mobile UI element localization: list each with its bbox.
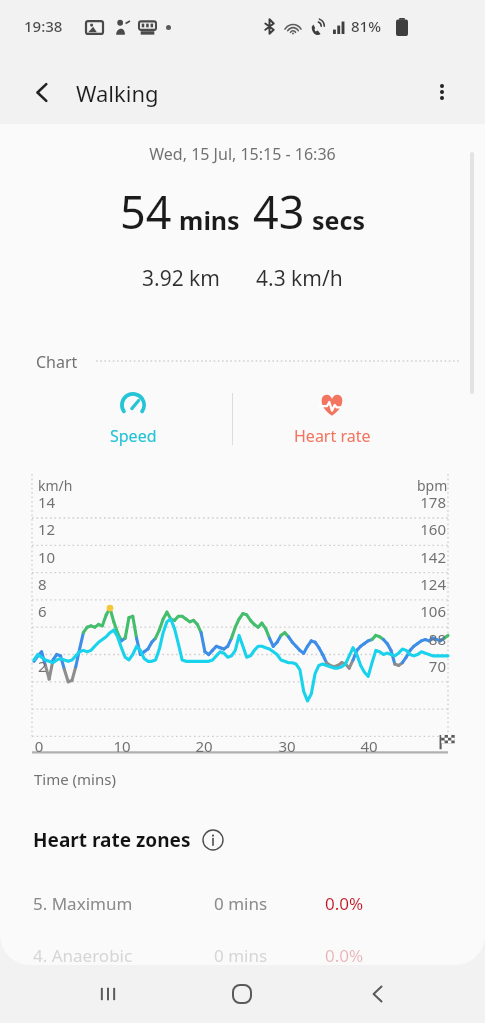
staticText: Wed, 15 Jul, 15:15 - 16:36 xyxy=(0,143,485,165)
staticText: 8 xyxy=(38,574,47,594)
staticText: 81% xyxy=(351,16,381,36)
staticText: Heart rate zones xyxy=(33,827,191,853)
staticText: Time (mins) xyxy=(34,769,116,789)
button[interactable]: Home xyxy=(212,965,272,1023)
staticText: 178 xyxy=(414,492,446,512)
button[interactable]: Heart rate zones xyxy=(33,827,224,853)
staticText: bpm xyxy=(417,476,448,495)
staticText: 70 xyxy=(414,656,446,676)
button[interactable]: Back xyxy=(20,70,64,114)
staticText: 4. Anaerobic xyxy=(33,944,133,965)
button[interactable]: More options xyxy=(420,70,464,114)
staticText: 4.3 km/h xyxy=(256,264,343,293)
staticText: 30 xyxy=(272,736,302,756)
staticText: 0 xyxy=(24,736,54,756)
staticText: Chart xyxy=(36,351,78,373)
staticText: 0.0% xyxy=(325,944,364,965)
staticText: 6 xyxy=(38,601,47,621)
staticText: Walking xyxy=(76,78,159,108)
staticText: 12 xyxy=(38,519,56,539)
button[interactable]: Recents xyxy=(78,965,138,1023)
staticText: 0 mins xyxy=(214,892,268,915)
other: Finish xyxy=(439,734,455,750)
staticText: 5. Maximum xyxy=(33,892,133,915)
button[interactable]: 4. Anaerobic xyxy=(0,944,485,965)
staticText: 124 xyxy=(414,574,446,594)
staticText: 10 xyxy=(107,736,137,756)
staticText: 19:38 xyxy=(24,16,63,36)
staticText: 106 xyxy=(414,601,446,621)
button[interactable]: Heart rate xyxy=(233,387,431,450)
staticText: mins xyxy=(179,203,240,237)
staticText: 142 xyxy=(414,547,446,567)
staticText: 160 xyxy=(414,519,446,539)
staticText: 0.0% xyxy=(325,892,364,915)
button[interactable]: Back xyxy=(348,965,408,1023)
staticText: 14 xyxy=(38,492,56,512)
staticText: 20 xyxy=(189,736,219,756)
staticText: 2 xyxy=(38,656,47,676)
staticText: secs xyxy=(312,203,365,237)
staticText: km/h xyxy=(38,476,73,495)
staticText: 54 xyxy=(120,181,172,242)
staticText: Heart rate xyxy=(294,425,371,447)
staticText: 43 xyxy=(253,181,305,242)
staticText: Speed xyxy=(110,425,157,447)
staticText: 40 xyxy=(354,736,384,756)
button[interactable]: 5. Maximum xyxy=(0,892,485,932)
staticText: 10 xyxy=(38,547,56,567)
staticText: 0 mins xyxy=(214,944,268,965)
staticText: 88 xyxy=(414,629,446,649)
other: Info xyxy=(202,829,224,851)
button[interactable]: Speed xyxy=(34,387,232,450)
staticText: 3.92 km xyxy=(142,264,220,293)
